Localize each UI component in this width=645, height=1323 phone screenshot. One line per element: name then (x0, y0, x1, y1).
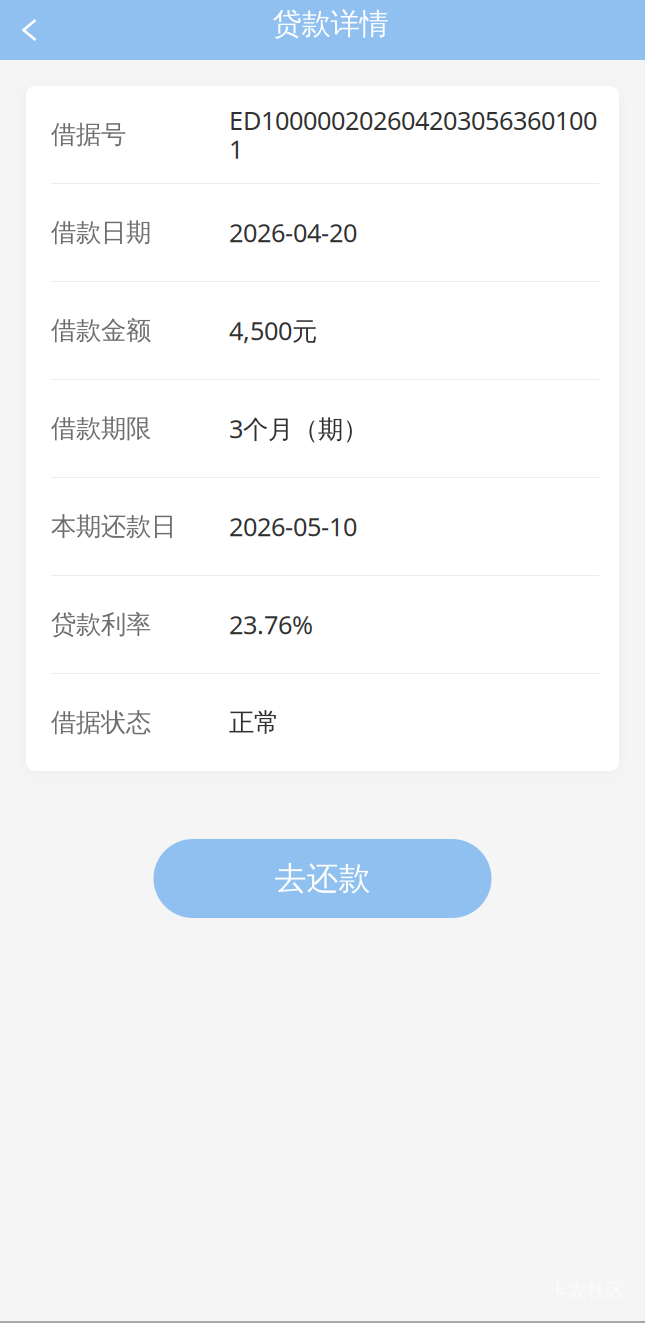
staticText: 借款金额 (51, 315, 151, 346)
staticText: 2026-04-20 (229, 216, 357, 249)
staticText: 借据状态 (51, 707, 151, 738)
staticText: 去还款 (274, 859, 370, 898)
staticText: 正常 (229, 707, 279, 738)
button[interactable]: 去还款 (153, 839, 491, 918)
staticText: 2026-05-10 (229, 510, 357, 543)
staticText: 4,500元 (229, 314, 317, 347)
staticText: 贷款利率 (51, 609, 151, 640)
staticText: 借款日期 (51, 217, 151, 248)
staticText: 借款期限 (51, 413, 151, 444)
staticText: 3个月（期） (229, 412, 368, 445)
staticText: ED1000002026042030563601001 (229, 103, 597, 166)
button[interactable]: Back (0, 0, 55, 59)
staticText: 贷款详情 (272, 6, 388, 42)
staticText: 23.76% (229, 608, 313, 641)
staticText: 本期还款日 (51, 511, 176, 542)
staticText: 借据号 (51, 119, 126, 150)
